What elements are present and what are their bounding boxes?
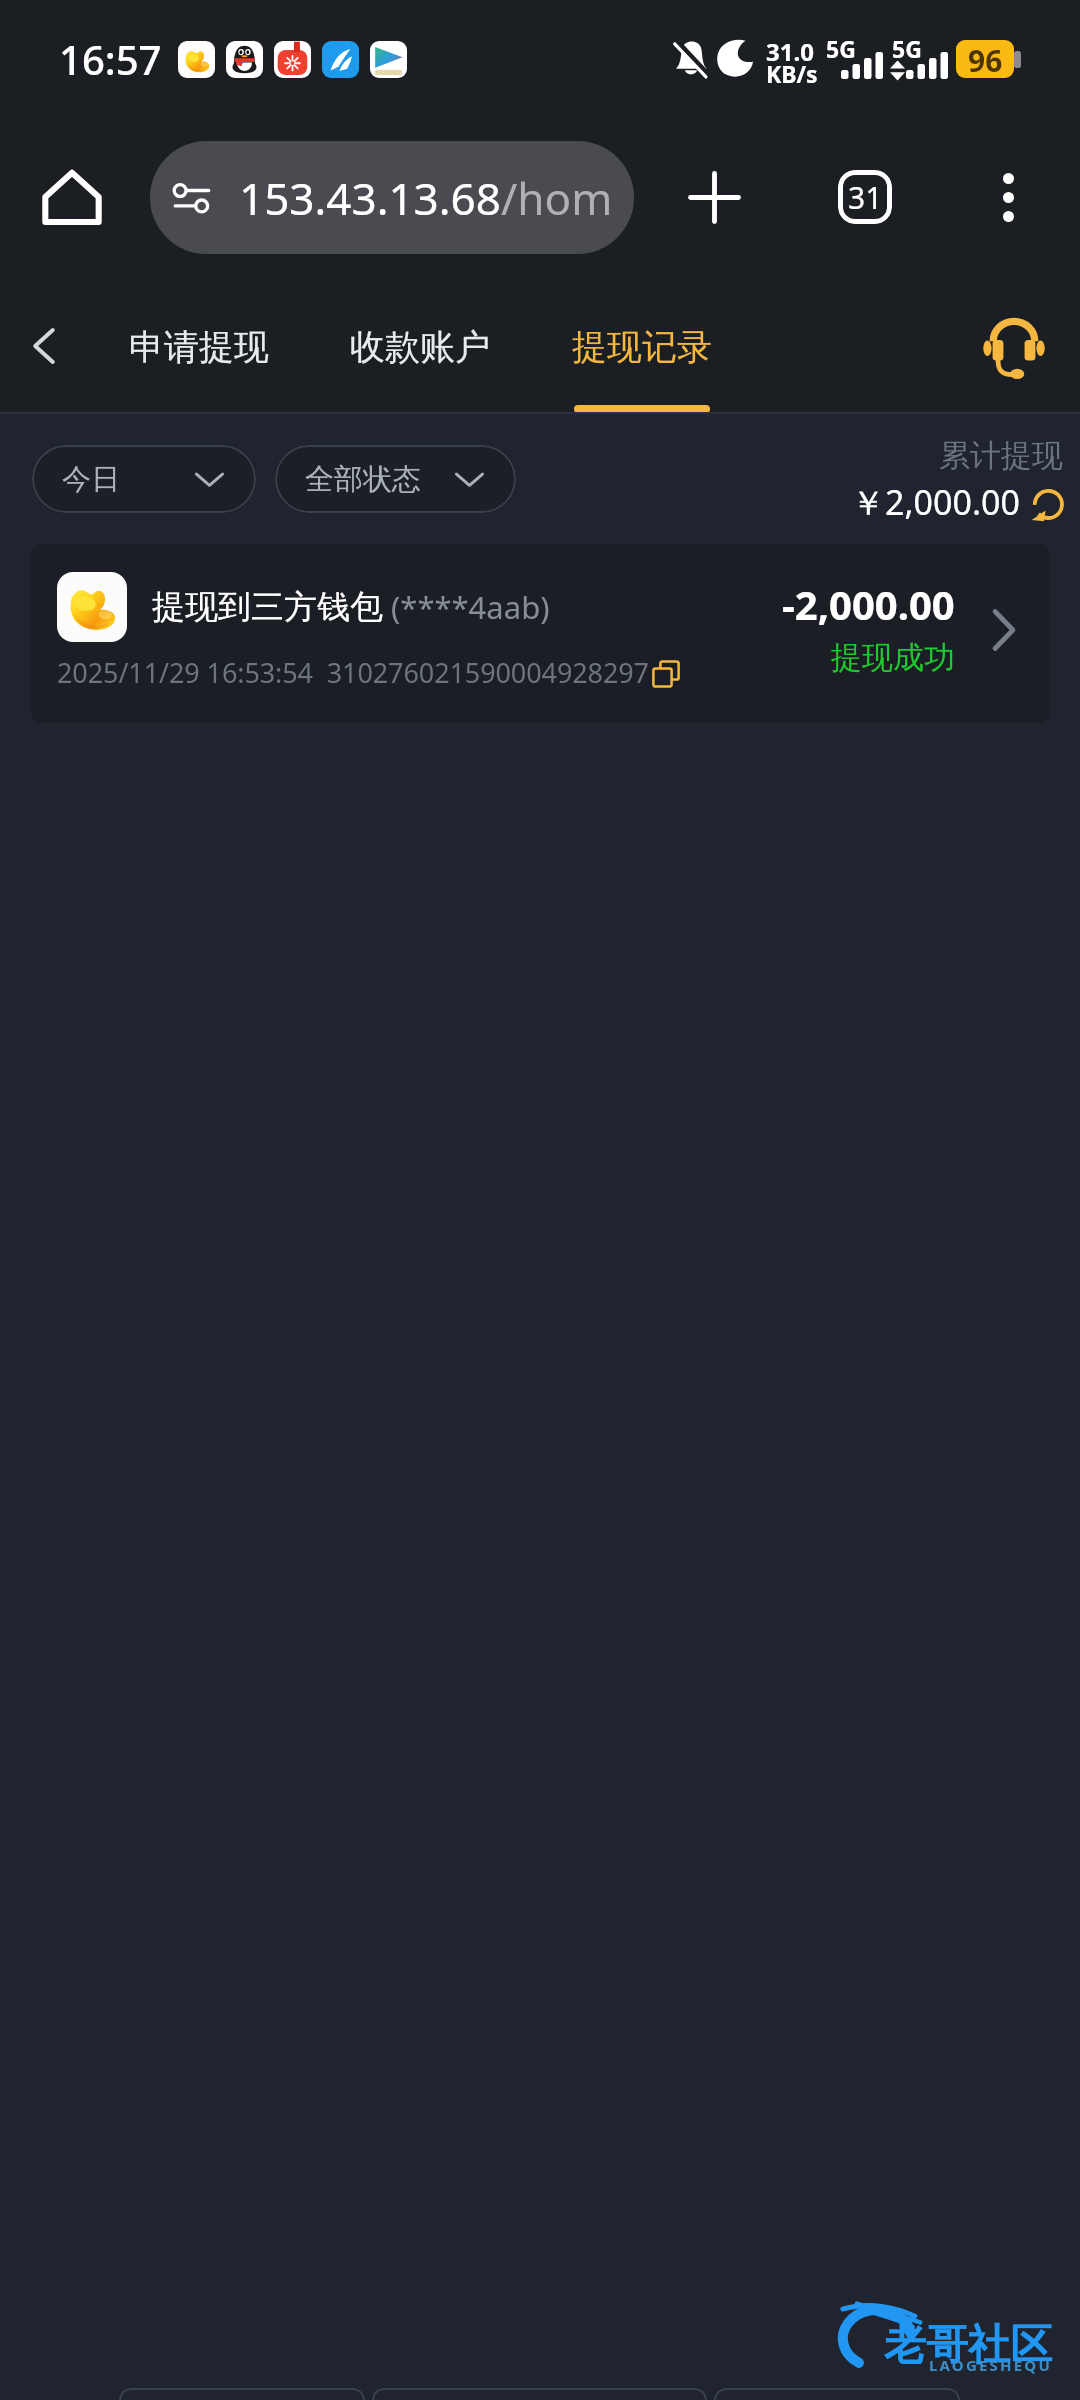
staticText: 提现记录 bbox=[572, 325, 712, 369]
staticText: 5G bbox=[892, 33, 922, 64]
button[interactable]: 申请提现 bbox=[109, 313, 289, 413]
staticText: 累计提现 bbox=[939, 436, 1063, 475]
staticText: 5G bbox=[826, 33, 856, 64]
staticText: ￥2,000.00 bbox=[851, 479, 1020, 521]
button[interactable]: Tabs bbox=[829, 161, 901, 233]
staticText: 全部状态 bbox=[305, 461, 421, 498]
button[interactable]: Refresh bbox=[1028, 484, 1068, 524]
staticText: /hom bbox=[501, 168, 613, 228]
staticText: 今日 bbox=[62, 461, 120, 498]
button[interactable]: 提现记录 bbox=[552, 313, 732, 413]
staticText: 申请提现 bbox=[129, 325, 269, 369]
staticText: 96 bbox=[968, 40, 1003, 78]
button[interactable]: Copy bbox=[645, 654, 687, 694]
button[interactable]: More options bbox=[972, 161, 1044, 233]
button[interactable]: Back bbox=[12, 314, 76, 378]
staticText: 31.0 bbox=[766, 35, 814, 68]
staticText: 老哥社区 bbox=[884, 2319, 1052, 2372]
button[interactable]: 今日 bbox=[32, 445, 256, 513]
staticText: 收款账户 bbox=[350, 325, 490, 369]
button[interactable]: 全部状态 bbox=[275, 445, 516, 513]
staticText: LAOGESHEQU bbox=[929, 2355, 1052, 2375]
button[interactable]: 提现到三方钱包 bbox=[31, 544, 1050, 723]
button[interactable] bbox=[714, 2388, 960, 2400]
button[interactable]: 收款账户 bbox=[330, 313, 510, 413]
button[interactable]: 153.43.13.68 bbox=[150, 141, 634, 254]
staticText: KB/s bbox=[766, 58, 818, 89]
button[interactable] bbox=[119, 2388, 365, 2400]
staticText: 31 bbox=[848, 177, 883, 218]
staticText: 提现到三方钱包 bbox=[152, 586, 383, 628]
staticText: (****4aab) bbox=[391, 586, 550, 628]
button[interactable]: New tab bbox=[678, 161, 750, 233]
staticText: 16:57 bbox=[59, 32, 162, 86]
staticText: 153.43.13.68 bbox=[239, 168, 501, 228]
staticText: 提现成功 bbox=[831, 638, 955, 677]
button[interactable] bbox=[372, 2388, 707, 2400]
staticText: 2025/11/29 16:53:54 31027602159000492829… bbox=[57, 654, 649, 691]
button[interactable]: Home bbox=[36, 161, 108, 233]
button[interactable]: Customer service bbox=[981, 314, 1047, 380]
staticText: -2,000.00 bbox=[782, 577, 955, 631]
